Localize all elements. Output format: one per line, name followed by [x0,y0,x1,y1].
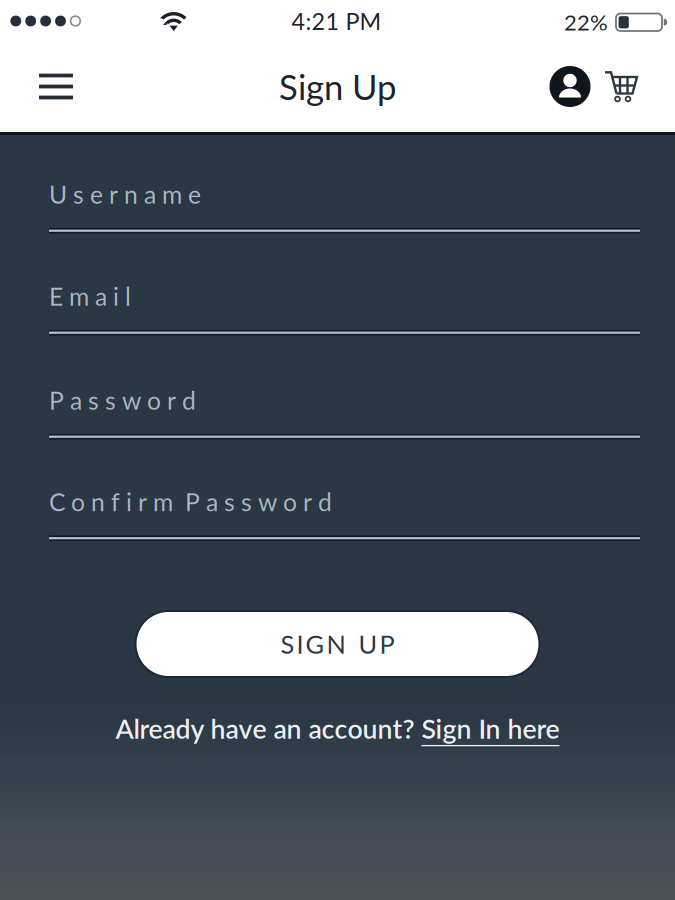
staticText: Sign Up [279,66,396,107]
button[interactable]: U s e r n a m e [49,179,640,233]
staticText: 4:21 PM [291,7,381,35]
staticText: Already have an account? [115,712,421,744]
staticText: P a s s w o r d [49,385,196,415]
staticText: U s e r n a m e [49,179,201,209]
staticText: 22% [564,9,608,35]
button[interactable]: E m a i l [49,281,640,335]
staticText: S I G N U P [280,629,394,659]
button[interactable]: P a s s w o r d [49,385,640,439]
button[interactable]: S I G N U P [136,612,538,676]
button[interactable]: Menu [39,69,73,103]
button[interactable]: C o n f i r m P a s s w o r d [49,487,640,541]
staticText: Sign In here [421,712,559,744]
button[interactable]: Sign In here [421,712,559,744]
staticText: E m a i l [49,281,131,311]
button[interactable]: Cart [604,70,637,101]
button[interactable]: Account [549,66,590,107]
staticText: C o n f i r m P a s s w o r d [49,487,332,517]
